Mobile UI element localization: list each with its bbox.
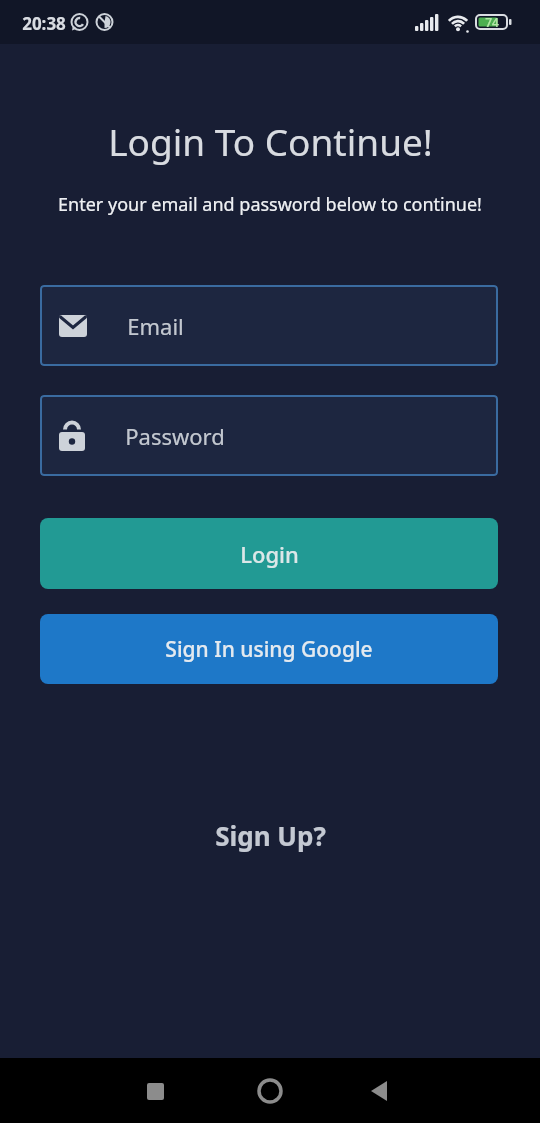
- staticText: Sign Up?: [215, 818, 326, 853]
- button[interactable]: Password: [40, 395, 498, 476]
- staticText: Login To Continue!: [108, 116, 433, 166]
- staticText: Email: [127, 311, 184, 341]
- staticText: Login: [240, 539, 299, 569]
- button[interactable]: Login: [40, 518, 498, 589]
- staticText: Sign In using Google: [165, 635, 373, 664]
- staticText: 74: [485, 14, 499, 30]
- button[interactable]: [355, 1066, 405, 1116]
- button[interactable]: [245, 1066, 295, 1116]
- staticText: Enter your email and password below to c…: [58, 192, 482, 217]
- staticText: 20:38: [22, 12, 66, 35]
- button[interactable]: Sign Up?: [215, 818, 326, 853]
- staticText: Password: [125, 421, 225, 451]
- button[interactable]: [130, 1066, 180, 1116]
- button[interactable]: Email: [40, 285, 498, 366]
- button[interactable]: Sign In using Google: [40, 614, 498, 684]
